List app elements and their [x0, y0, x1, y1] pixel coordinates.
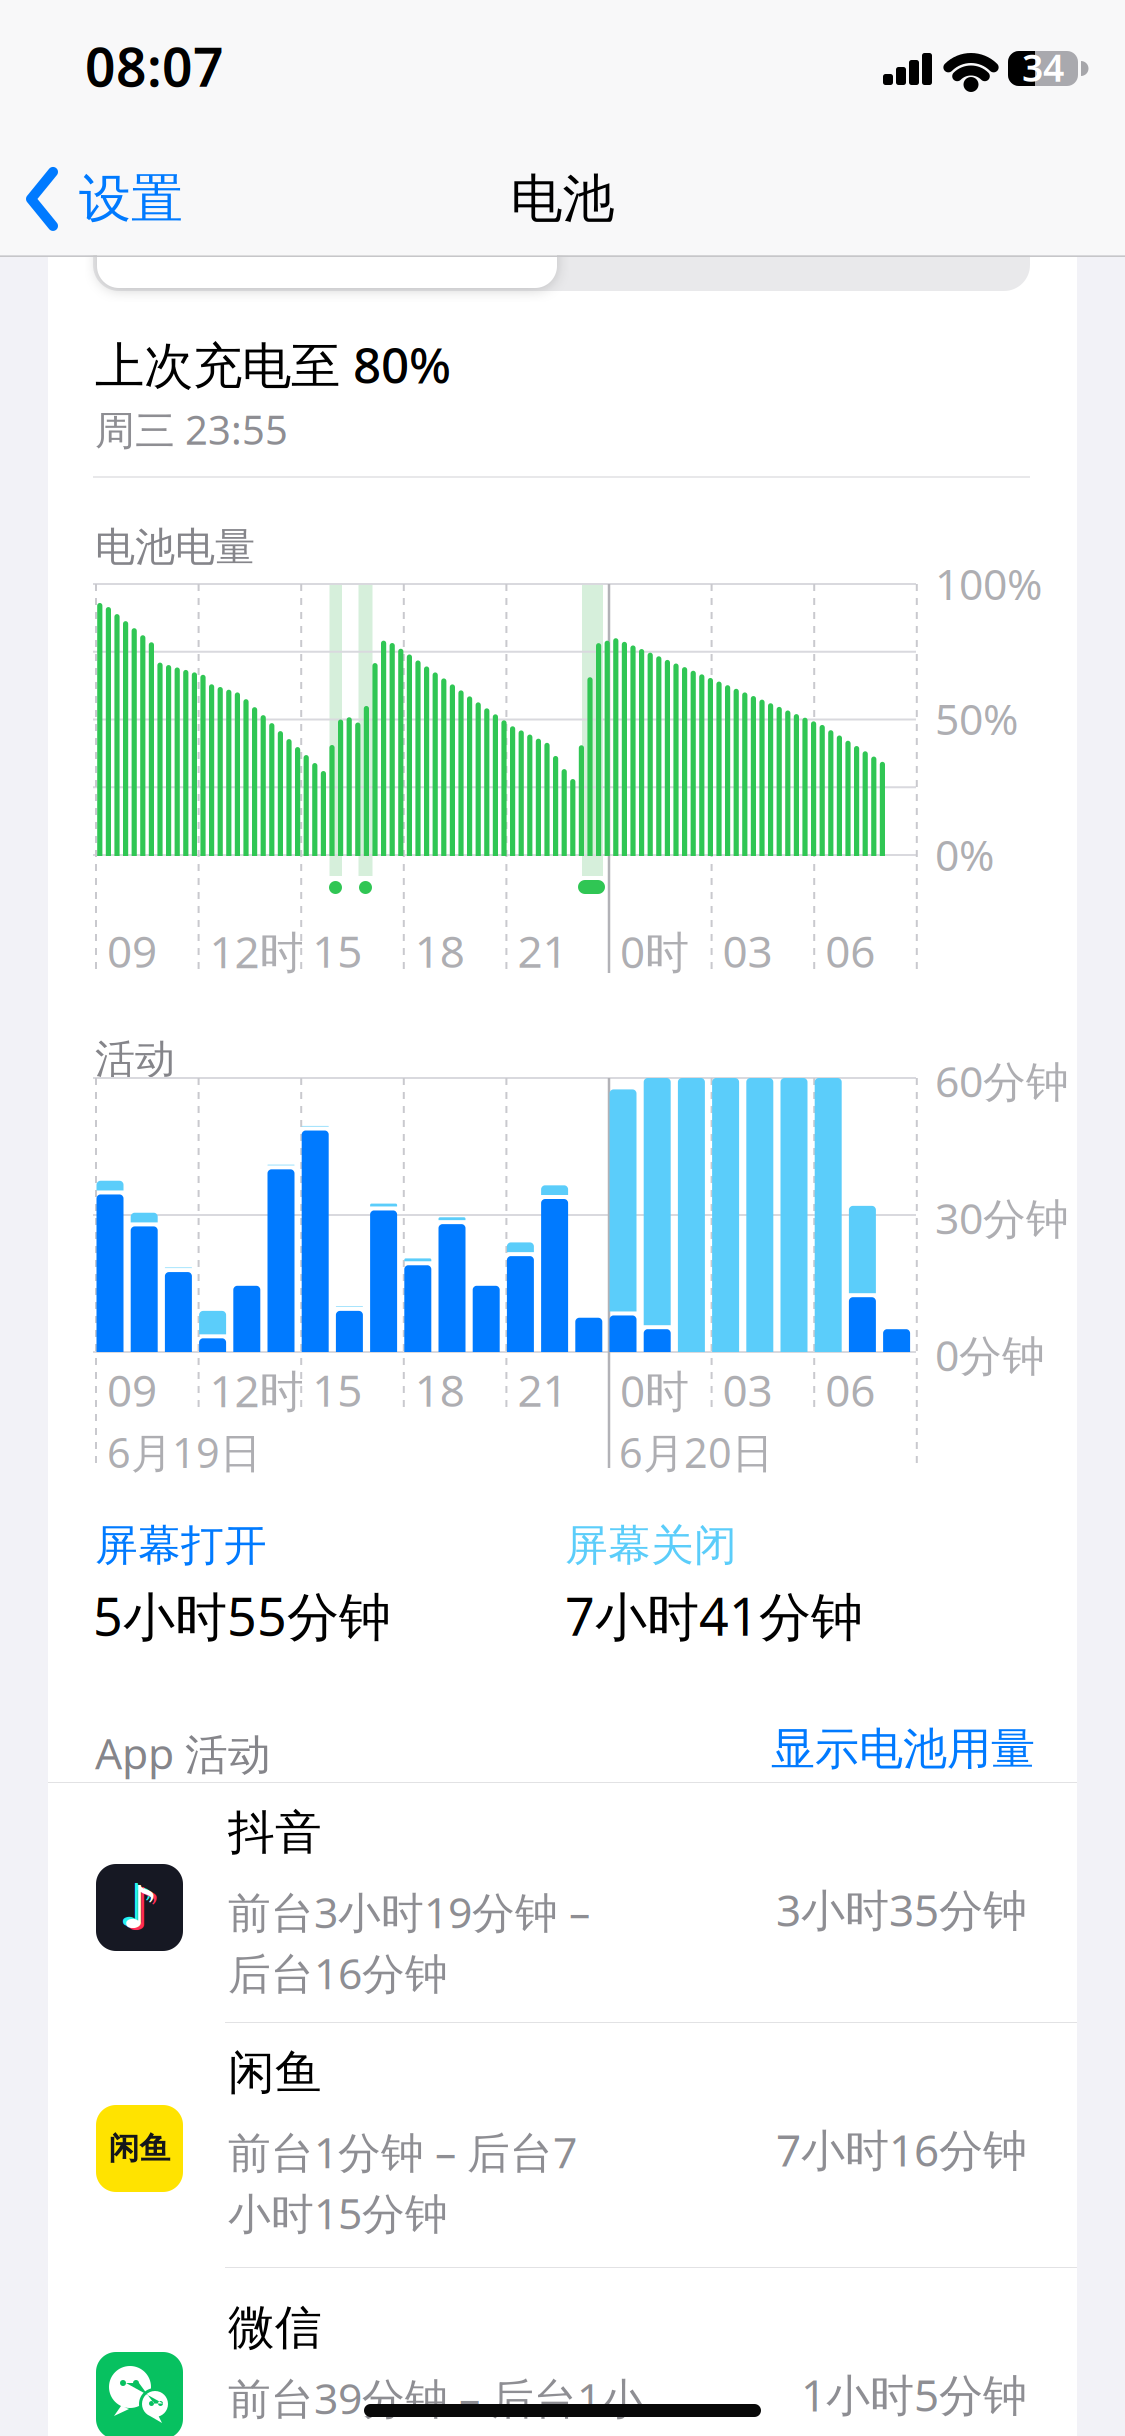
staticText: 100% [935, 555, 1042, 612]
staticText: 12时 [210, 1361, 304, 1419]
staticText: 18 [415, 922, 465, 980]
staticText: 06 [825, 922, 875, 980]
staticText: 7小时41分钟 [565, 1581, 863, 1650]
staticText: 34 [1022, 42, 1064, 92]
staticText: ♪ [121, 1874, 158, 1941]
staticText: 5小时55分钟 [93, 1581, 391, 1650]
staticText: 08:07 [85, 31, 224, 101]
button[interactable]: ♪ [48, 1783, 1077, 2023]
staticText: 后台16分钟 [228, 1944, 448, 2001]
staticText: 0时 [620, 922, 689, 980]
staticText: 1小时5分钟 [801, 2365, 1027, 2424]
staticText: 显示电池用量 [771, 1722, 1035, 1776]
staticText: 微信 [228, 2299, 322, 2356]
staticText: 03 [723, 922, 773, 980]
staticText: 21 [517, 1361, 567, 1419]
staticText: 周三 23:55 [95, 403, 288, 456]
staticText: 前台1分钟 – 后台7 [228, 2123, 577, 2180]
button[interactable]: 最近10天 [93, 225, 1030, 291]
button[interactable]: 微信 [48, 2268, 1077, 2436]
staticText: 09 [107, 1361, 157, 1419]
staticText: 小时15分钟 [228, 2184, 448, 2241]
staticText: 屏幕关闭 [565, 1519, 737, 1572]
staticText: 电池电量 [95, 523, 255, 572]
button[interactable]: 显示电池用量 [771, 1722, 1035, 1776]
staticText: 电池 [510, 167, 614, 231]
staticText: 0分钟 [935, 1326, 1045, 1383]
staticText: 30分钟 [935, 1189, 1069, 1246]
staticText: 闲鱼 [108, 2130, 170, 2167]
button[interactable]: 设置 [27, 167, 183, 231]
button[interactable]: 最近24小时 [97, 228, 557, 288]
staticText: 抖音 [228, 1804, 322, 1861]
staticText: 0% [935, 826, 994, 883]
staticText: 06 [825, 1361, 875, 1419]
staticText: 活动 [95, 1035, 175, 1084]
staticText: 03 [723, 1361, 773, 1419]
staticText: App 活动 [95, 1724, 271, 1781]
staticText: 15 [312, 922, 362, 980]
staticText: 12时 [210, 922, 304, 980]
staticText: 09 [107, 922, 157, 980]
staticText: 3小时35分钟 [776, 1880, 1027, 1939]
staticText: ♪ [124, 1876, 161, 1943]
staticText: 60分钟 [935, 1052, 1069, 1109]
staticText: 6月19日 [107, 1425, 261, 1479]
staticText: 21 [517, 922, 567, 980]
staticText: 前台39分钟 – 后台1小 [228, 2369, 644, 2426]
staticText: 18 [415, 1361, 465, 1419]
staticText: 7小时16分钟 [776, 2120, 1027, 2179]
staticText: 6月20日 [619, 1425, 773, 1479]
staticText: 50% [935, 690, 1018, 747]
staticText: 0时 [620, 1361, 689, 1419]
staticText: 前台3小时19分钟 – [228, 1883, 590, 1940]
staticText: 设置 [79, 167, 183, 231]
button[interactable]: 闲鱼 [48, 2023, 1077, 2268]
staticText: 15 [312, 1361, 362, 1419]
staticText: 屏幕打开 [95, 1519, 267, 1572]
staticText: ♪ [118, 1872, 155, 1939]
staticText: 上次充电至 80% [95, 331, 451, 397]
staticText: 闲鱼 [228, 2044, 322, 2101]
